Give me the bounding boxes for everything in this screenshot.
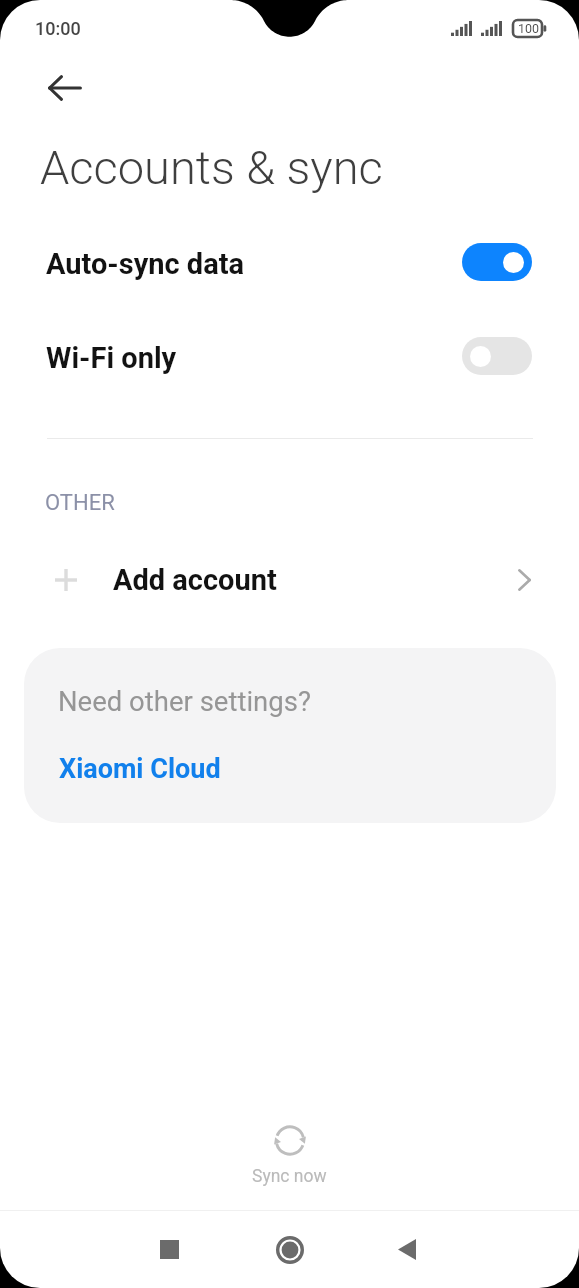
button[interactable]: Auto-sync data: [0, 231, 579, 293]
staticText: Sync now: [252, 1166, 327, 1187]
button[interactable]: Add account: [0, 547, 579, 613]
staticText: 100: [518, 21, 540, 36]
button[interactable]: Xiaomi Cloud: [59, 753, 221, 785]
staticText: Wi-Fi only: [46, 341, 177, 375]
button[interactable]: Recent apps: [129, 1211, 209, 1288]
button[interactable]: Need other settings?: [24, 648, 556, 823]
staticText: OTHER: [45, 490, 115, 516]
button[interactable]: Wi-Fi only: [0, 325, 579, 387]
button[interactable]: Sync now: [226, 1120, 353, 1192]
staticText: Accounts & sync: [40, 140, 383, 195]
staticText: Add account: [113, 563, 277, 597]
staticText: Need other settings?: [58, 685, 311, 717]
button[interactable]: Switch off: [462, 337, 532, 375]
staticText: 10:00: [35, 18, 81, 39]
staticText: Auto-sync data: [46, 247, 245, 281]
button[interactable]: Back: [41, 64, 89, 112]
button[interactable]: Home: [250, 1211, 330, 1288]
button[interactable]: Switch on: [462, 243, 532, 281]
staticText: Xiaomi Cloud: [59, 753, 221, 785]
button[interactable]: Back: [367, 1211, 447, 1288]
